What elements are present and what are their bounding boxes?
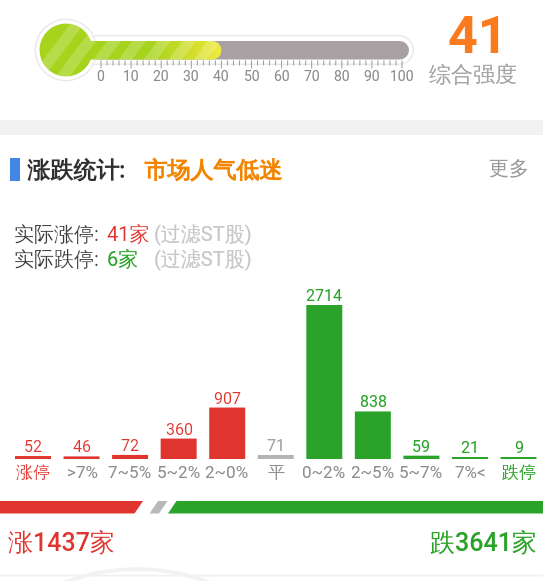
staticText: 907	[214, 389, 241, 408]
staticText: (过滤ST股)	[154, 222, 252, 247]
staticText: 59	[412, 437, 430, 456]
staticText: 30	[183, 68, 199, 84]
staticText: 跌3641家	[430, 527, 537, 557]
staticText: 涨停	[16, 462, 50, 483]
staticText: 90	[364, 68, 380, 84]
staticText: 52	[24, 437, 42, 456]
button[interactable]	[0, 150, 543, 188]
staticText: 平	[268, 462, 285, 483]
staticText: 360	[166, 420, 193, 439]
staticText: 9	[515, 438, 524, 457]
staticText: >7%	[67, 462, 98, 482]
staticText: 实际涨停:	[14, 222, 99, 247]
staticText: 5~7%	[399, 462, 443, 482]
staticText: 41	[448, 5, 508, 65]
staticText: 7%<	[455, 462, 486, 482]
staticText: 20	[153, 68, 169, 84]
staticText: 7~5%	[108, 462, 152, 482]
staticText: 实际跌停:	[14, 247, 99, 272]
staticText: 5~2%	[157, 462, 201, 482]
staticText: 72	[121, 436, 139, 455]
staticText: 46	[73, 437, 91, 456]
staticText: 80	[334, 68, 350, 84]
staticText: 2~5%	[351, 462, 395, 482]
staticText: 10	[123, 68, 139, 84]
staticText: 市场人气低迷	[144, 156, 282, 185]
staticText: 0~2%	[302, 462, 346, 482]
staticText: 6家	[107, 247, 139, 272]
staticText: 100	[390, 68, 414, 84]
staticText: 2714	[306, 286, 342, 305]
staticText: 71	[267, 436, 285, 455]
staticText: 0	[97, 68, 105, 84]
staticText: 跌停	[502, 462, 536, 483]
staticText: 60	[274, 68, 290, 84]
staticText: 2~0%	[205, 462, 249, 482]
button[interactable]: 更多	[474, 152, 529, 184]
staticText: 50	[244, 68, 260, 84]
staticText: 21	[461, 438, 479, 457]
staticText: 更多	[489, 156, 529, 181]
staticText: 838	[360, 392, 387, 411]
staticText: 涨跌统计:	[27, 156, 126, 185]
staticText: 涨1437家	[8, 527, 115, 557]
staticText: 41家	[107, 222, 150, 247]
staticText: 40	[213, 68, 229, 84]
staticText: (过滤ST股)	[154, 247, 252, 272]
staticText: 70	[304, 68, 320, 84]
staticText: 综合强度	[429, 61, 517, 89]
